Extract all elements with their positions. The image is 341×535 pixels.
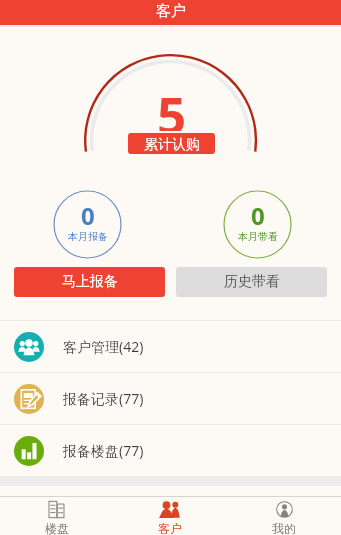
button[interactable]: 我的 Profile tab xyxy=(227,497,341,535)
staticText: 历史带看 xyxy=(224,273,280,291)
button[interactable]: 报备楼盘(77) xyxy=(0,425,341,476)
staticText: 本月带看 xyxy=(238,230,278,243)
staticText: 本月报备 xyxy=(68,230,108,243)
staticText: 报备记录(77) xyxy=(63,389,144,408)
staticText: 0 xyxy=(251,199,265,232)
button[interactable]: 客户管理(42) xyxy=(0,321,341,372)
staticText: 报备楼盘(77) xyxy=(63,441,144,460)
staticText: 累计认购 xyxy=(144,136,200,154)
button[interactable]: 客户 Customers tab xyxy=(113,497,227,535)
button[interactable]: 马上报备 xyxy=(14,267,165,297)
staticText: 马上报备 xyxy=(62,273,118,291)
button[interactable]: 累计认购 xyxy=(128,133,215,154)
button[interactable]: 历史带看 xyxy=(176,267,327,297)
staticText: 客户 xyxy=(158,521,182,535)
staticText: 0 xyxy=(81,199,95,232)
staticText: 客户 xyxy=(156,2,186,21)
button[interactable]: 报备记录(77) xyxy=(0,373,341,424)
button[interactable]: 0 xyxy=(223,190,292,259)
staticText: 5 xyxy=(157,79,187,131)
button[interactable]: 0 xyxy=(53,190,122,259)
button[interactable]: 楼盘 Properties tab xyxy=(0,497,113,535)
staticText: 我的 xyxy=(272,521,296,535)
staticText: 楼盘 xyxy=(45,521,69,535)
staticText: 客户管理(42) xyxy=(63,337,144,356)
